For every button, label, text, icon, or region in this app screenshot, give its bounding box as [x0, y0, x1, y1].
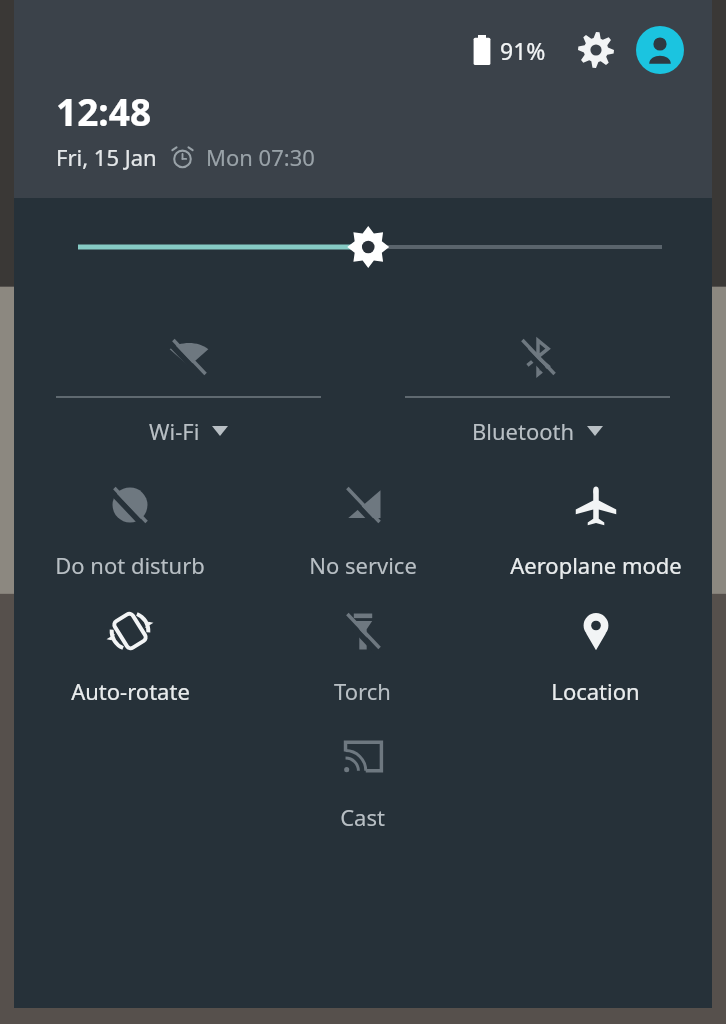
button[interactable]: Brightness [14, 204, 712, 290]
staticText: Mon 07:30 [206, 142, 315, 172]
staticText: Wi-Fi [149, 416, 200, 446]
button[interactable]: No service [246, 482, 479, 580]
staticText: 91% [500, 35, 546, 66]
button[interactable]: Aeroplane mode [479, 482, 712, 580]
button[interactable]: User profile [636, 26, 684, 74]
staticText: Aeroplane mode [510, 550, 682, 580]
button[interactable]: Settings [574, 28, 618, 72]
button[interactable]: Do not disturb [14, 482, 246, 580]
staticText: Bluetooth [472, 416, 575, 446]
staticText: Do not disturb [55, 550, 205, 580]
button[interactable]: 12:48 [56, 86, 315, 172]
button[interactable]: Wi-Fi [14, 334, 363, 446]
button[interactable]: Bluetooth [363, 334, 712, 446]
staticText: Auto-rotate [71, 676, 190, 706]
button[interactable]: Auto-rotate [14, 608, 246, 706]
staticText: No service [309, 550, 417, 580]
button[interactable]: Torch [246, 608, 479, 706]
button[interactable]: Location [479, 608, 712, 706]
staticText: Cast [340, 802, 385, 832]
staticText: Fri, 15 Jan [56, 142, 157, 172]
staticText: 12:48 [56, 86, 152, 136]
staticText: Location [551, 676, 640, 706]
button[interactable]: Cast [246, 734, 479, 832]
staticText: Torch [334, 676, 391, 706]
